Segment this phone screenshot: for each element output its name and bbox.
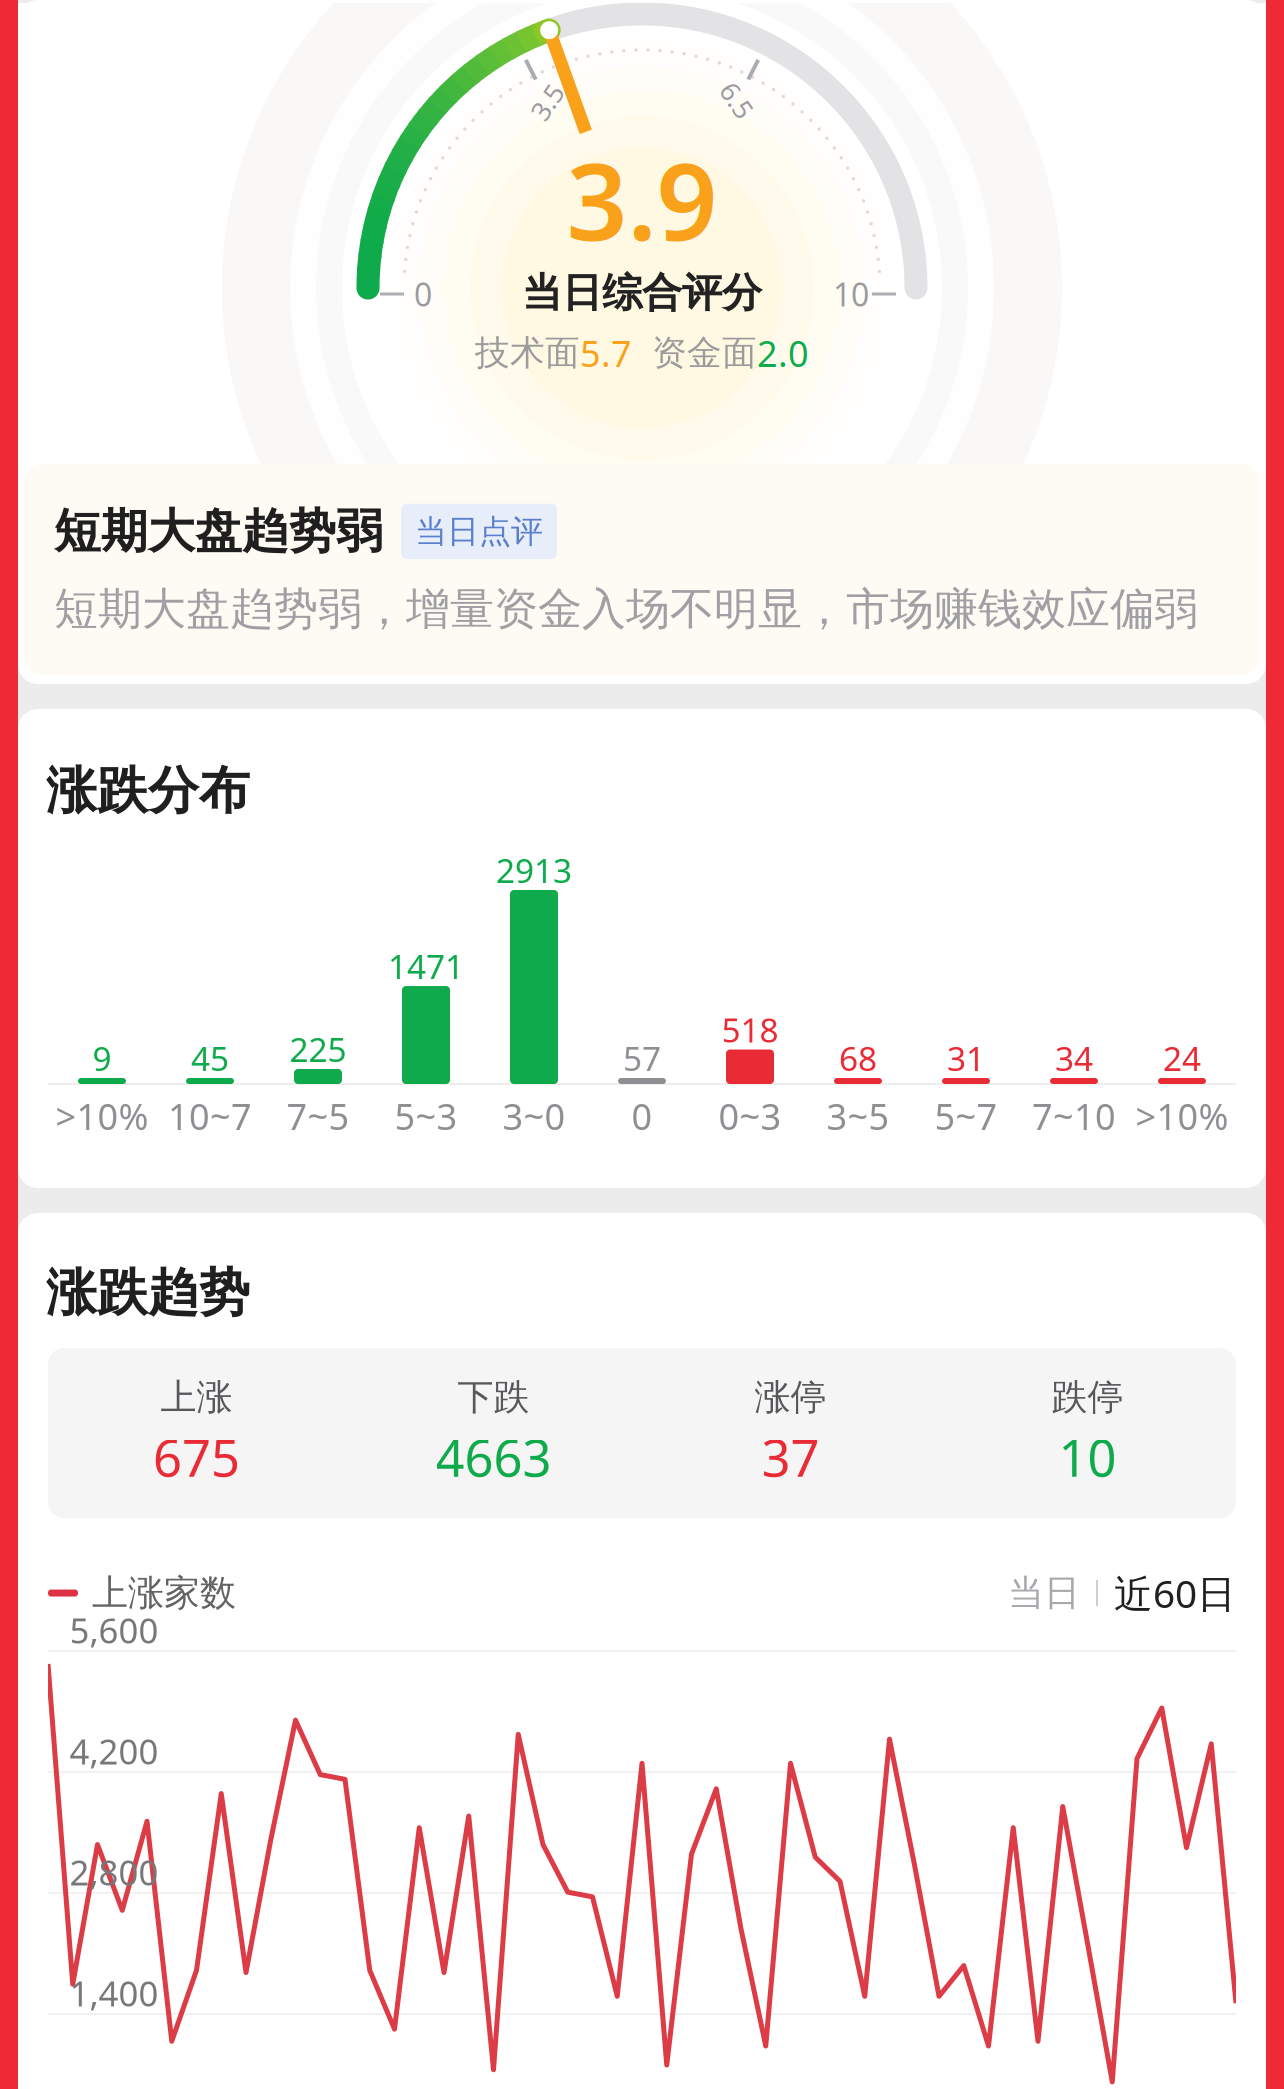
staticText: 3.9 — [566, 128, 717, 270]
staticText: 9 — [92, 1036, 111, 1080]
staticText: 10 — [1058, 1423, 1116, 1491]
staticText: 7~5 — [286, 1092, 349, 1140]
staticText: 3~5 — [826, 1092, 889, 1140]
staticText: 跌停 — [1051, 1375, 1123, 1419]
staticText: 短期大盘趋势弱，增量资金入场不明显，市场赚钱效应偏弱 — [54, 582, 1198, 636]
staticText: 4,200 — [69, 1728, 158, 1774]
staticText: 4663 — [435, 1423, 551, 1491]
staticText: 涨跌趋势 — [46, 1262, 250, 1324]
staticText: 近60日 — [1114, 1567, 1236, 1619]
staticText: 518 — [721, 1007, 778, 1052]
staticText: 675 — [153, 1423, 240, 1491]
staticText: 34 — [1055, 1036, 1093, 1080]
staticText: 10~7 — [168, 1092, 252, 1140]
staticText: 涨跌分布 — [46, 760, 250, 822]
staticText: 37 — [761, 1423, 819, 1491]
staticText: 7~10 — [1032, 1092, 1116, 1140]
staticText: >10% — [55, 1092, 148, 1140]
staticText: 24 — [1163, 1036, 1201, 1080]
staticText: 1471 — [388, 944, 464, 988]
staticText: 45 — [191, 1036, 229, 1080]
staticText: 31 — [947, 1036, 985, 1080]
staticText: 3~0 — [502, 1092, 565, 1140]
staticText: 0 — [631, 1092, 652, 1140]
staticText: 上涨 — [160, 1375, 232, 1419]
staticText: 10 — [833, 273, 869, 315]
staticText: 68 — [839, 1036, 877, 1080]
staticText: 225 — [289, 1027, 346, 1071]
staticText: >10% — [1135, 1092, 1228, 1140]
staticText: 5~7 — [934, 1092, 997, 1140]
staticText: 5~3 — [394, 1092, 457, 1140]
staticText: 当日点评 — [415, 512, 543, 551]
staticText: 2913 — [496, 848, 572, 892]
staticText: 0~3 — [718, 1092, 781, 1140]
staticText: 1,400 — [69, 1970, 158, 2016]
staticText: 短期大盘趋势弱 — [54, 503, 383, 560]
staticText: 当日 — [1008, 1571, 1080, 1615]
staticText: 2.0 — [757, 329, 809, 377]
staticText: 当日综合评分 — [522, 268, 762, 317]
staticText: 资金面 — [652, 332, 757, 374]
staticText: 5,600 — [69, 1607, 158, 1653]
staticText: 上涨家数 — [92, 1571, 236, 1615]
staticText: 3.5 — [528, 84, 565, 120]
staticText: 5.7 — [580, 329, 632, 377]
staticText: 下跌 — [457, 1375, 529, 1419]
staticText: 技术面 — [475, 332, 580, 374]
staticText: 0 — [414, 273, 432, 315]
staticText: 涨停 — [754, 1375, 826, 1419]
staticText: 57 — [623, 1036, 661, 1080]
staticText: 2,800 — [69, 1849, 158, 1895]
staticText: 6.5 — [718, 82, 755, 118]
